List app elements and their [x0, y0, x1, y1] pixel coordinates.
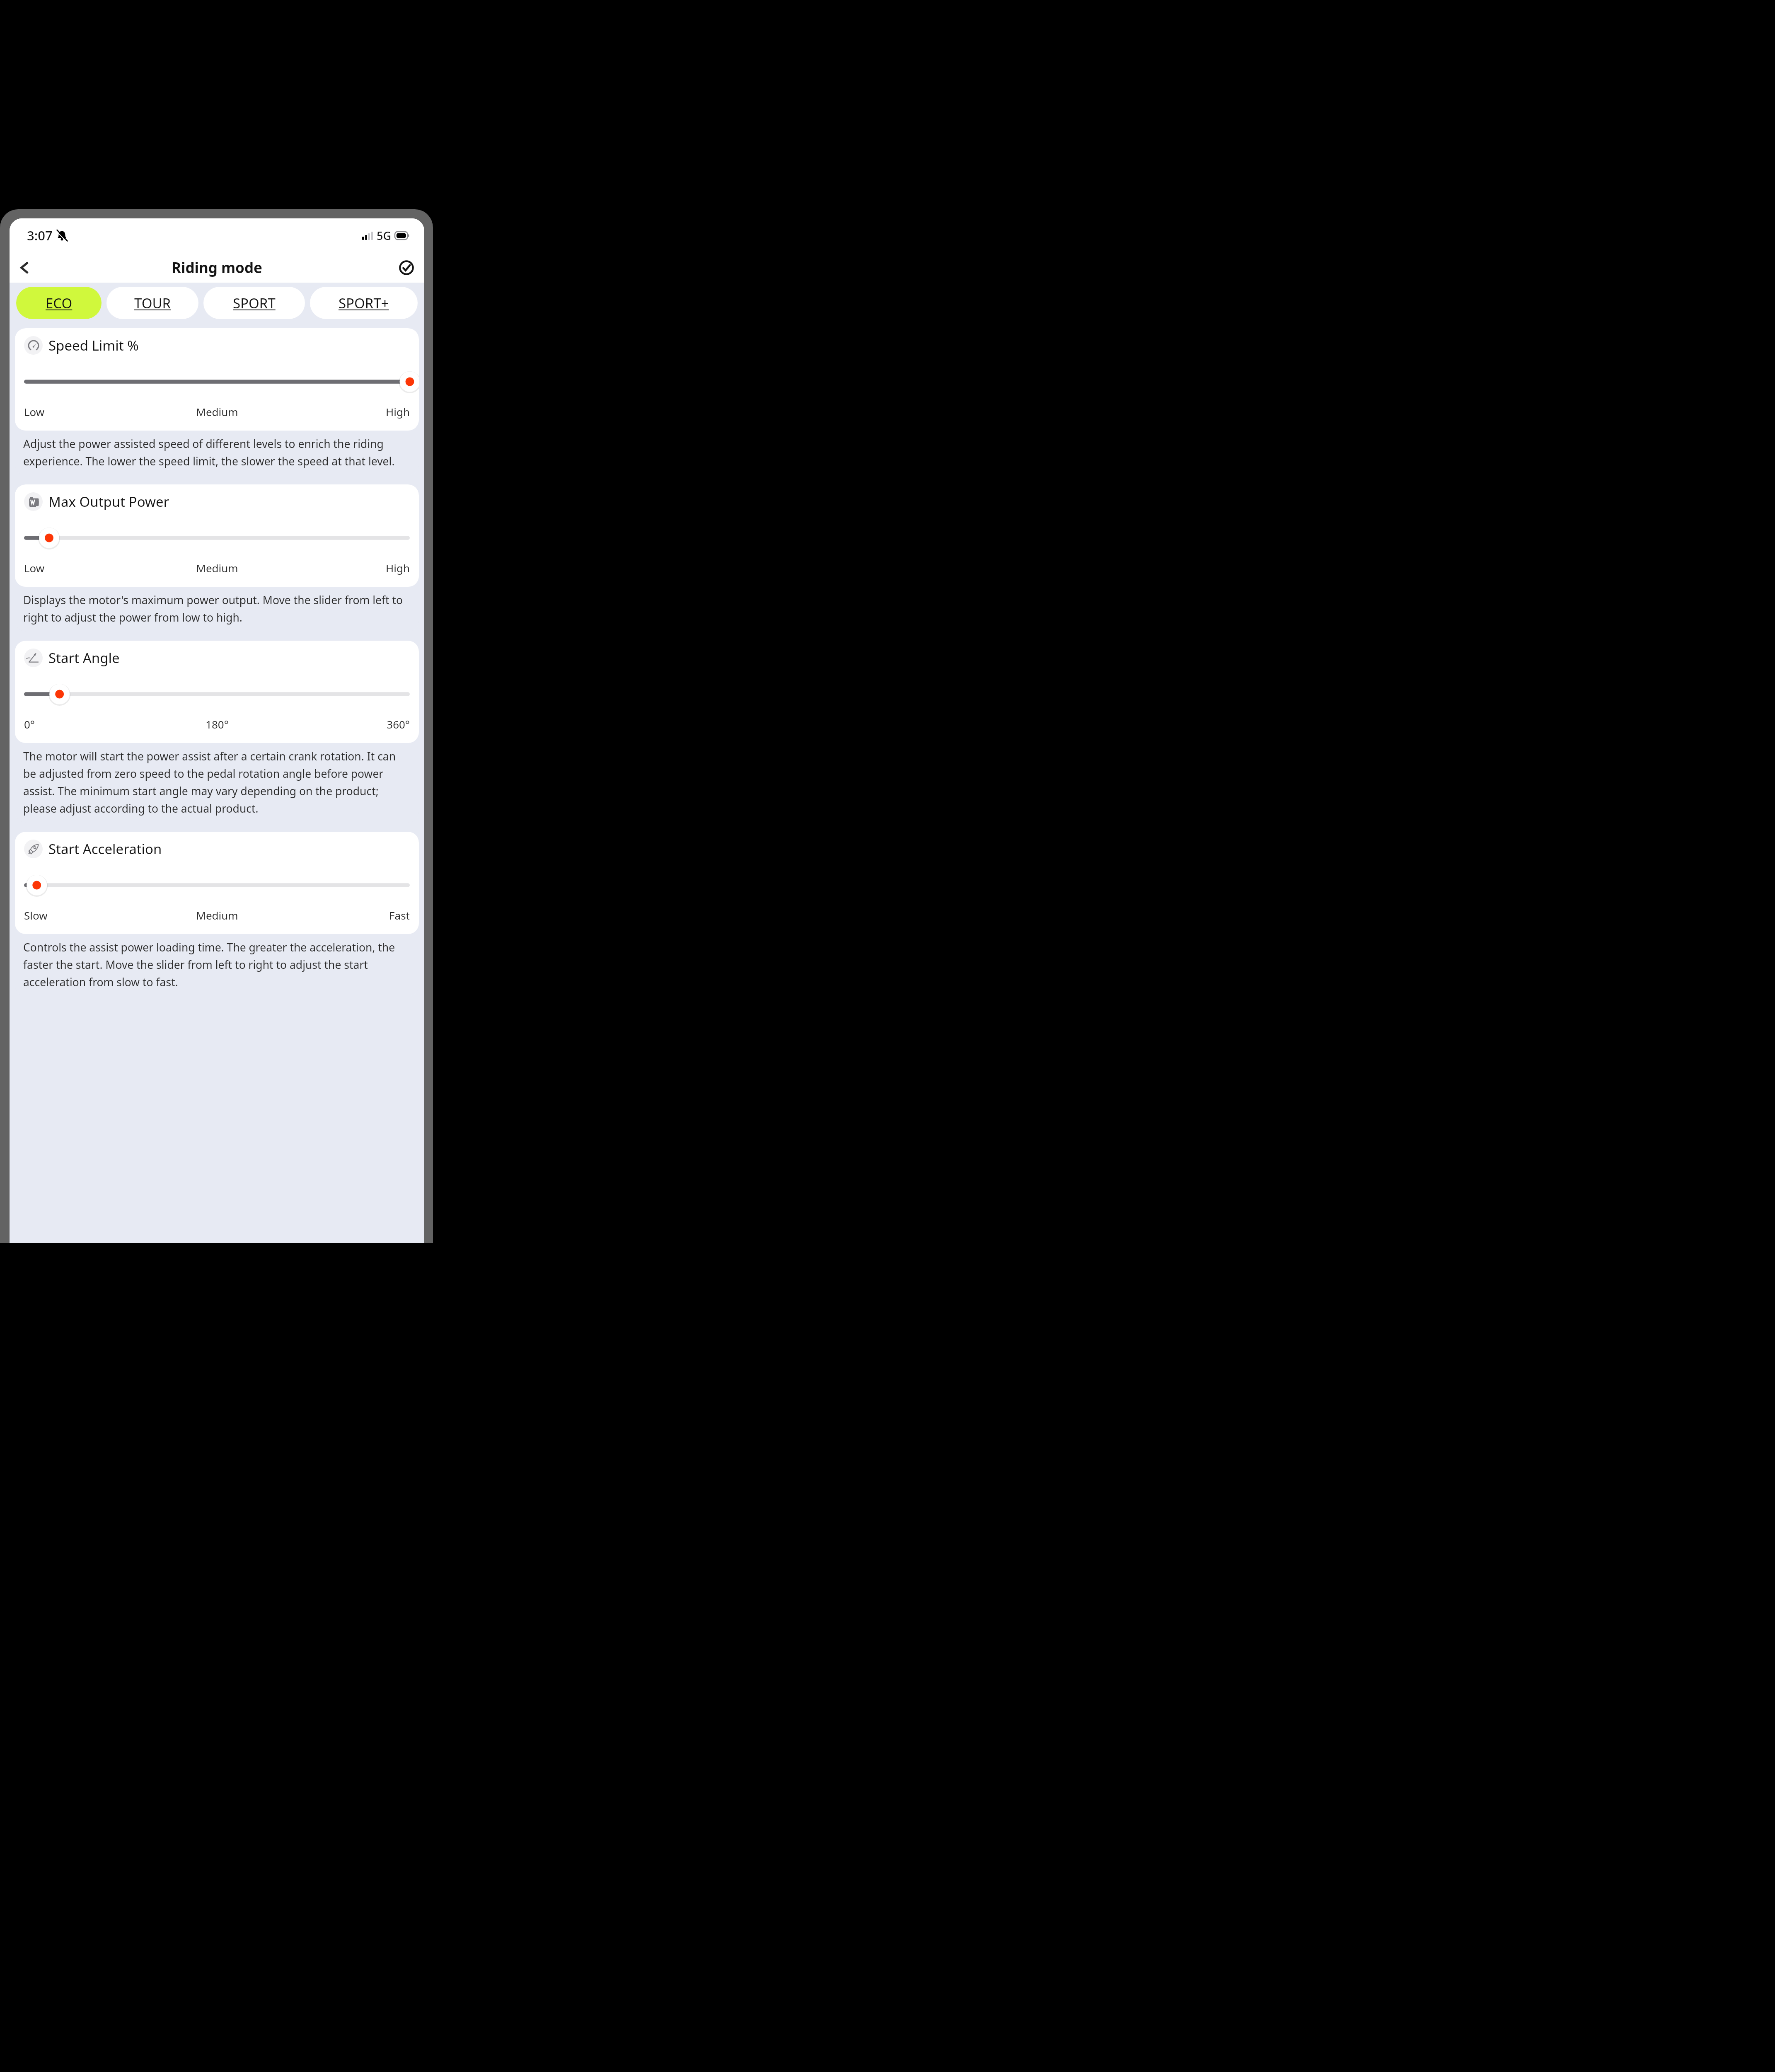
staticText: Medium: [153, 908, 281, 922]
staticText: 360°: [281, 717, 410, 731]
staticText: Medium: [153, 561, 281, 575]
staticText: 180°: [153, 717, 281, 731]
button[interactable]: Slider: [24, 683, 410, 705]
button[interactable]: Confirm: [393, 254, 420, 281]
staticText: Adjust the power assisted speed of diffe…: [23, 436, 411, 469]
button[interactable]: Back: [10, 253, 39, 283]
button[interactable]: Start Angle: [15, 641, 419, 743]
staticText: Start Angle: [48, 649, 120, 667]
staticText: SPORT: [233, 294, 276, 312]
button[interactable]: Slider: [24, 527, 410, 549]
staticText: Controls the assist power loading time. …: [23, 940, 411, 990]
staticText: Fast: [281, 908, 410, 922]
staticText: Displays the motor's maximum power outpu…: [23, 593, 411, 625]
staticText: ECO: [46, 294, 73, 312]
button[interactable]: ECO: [16, 287, 102, 319]
staticText: The motor will start the power assist af…: [23, 749, 411, 816]
staticText: Medium: [153, 404, 281, 419]
staticText: Riding mode: [172, 258, 262, 278]
button[interactable]: Slider: [24, 370, 410, 393]
staticText: Low: [24, 561, 153, 575]
staticText: Speed Limit %: [48, 336, 139, 355]
button[interactable]: Speed Limit %: [15, 328, 419, 431]
button[interactable]: TOUR: [106, 287, 198, 319]
staticText: 3:07: [27, 227, 53, 244]
button[interactable]: SPORT+: [310, 287, 418, 319]
button[interactable]: SPORT: [203, 287, 305, 319]
button[interactable]: Slider: [24, 874, 410, 896]
staticText: Slow: [24, 908, 153, 922]
staticText: Max Output Power: [48, 492, 169, 511]
staticText: Low: [24, 404, 153, 419]
staticText: SPORT+: [339, 294, 389, 312]
staticText: High: [281, 561, 410, 575]
button[interactable]: Start Acceleration: [15, 832, 419, 934]
staticText: TOUR: [134, 294, 171, 312]
staticText: High: [281, 404, 410, 419]
staticText: 0°: [24, 717, 153, 731]
button[interactable]: Max Output Power: [15, 484, 419, 587]
staticText: 5G: [377, 228, 392, 243]
staticText: Start Acceleration: [48, 840, 162, 858]
